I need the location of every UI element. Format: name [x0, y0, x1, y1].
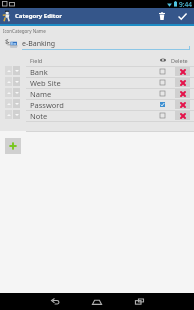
button[interactable]: Home — [82, 293, 112, 310]
button[interactable]: Move Bank down — [13, 66, 20, 75]
button[interactable]: Move Password up — [0, 99, 194, 110]
button[interactable]: Show Note — [157, 110, 168, 121]
staticText: Category Name — [12, 28, 46, 34]
button[interactable]: e-Banking — [22, 38, 190, 50]
button[interactable]: Delete category — [154, 8, 170, 24]
button[interactable]: Move Password up — [5, 99, 12, 108]
button[interactable]: Move Name down — [13, 88, 20, 97]
button[interactable]: Show Bank — [157, 66, 168, 77]
button[interactable]: Show Password — [157, 99, 168, 110]
button[interactable]: Choose icon — [2, 37, 20, 49]
button[interactable]: Move Web Site up — [5, 77, 12, 86]
button[interactable]: Move Password down — [13, 99, 20, 108]
button[interactable]: Delete Bank — [175, 67, 190, 76]
button[interactable]: Show Web Site — [157, 77, 168, 88]
button[interactable]: Move Bank up — [0, 66, 194, 77]
button[interactable]: Recent apps — [124, 293, 154, 310]
staticText: Icon — [3, 28, 12, 34]
staticText: e-Banking — [22, 39, 56, 49]
button[interactable]: Save — [174, 8, 190, 24]
button[interactable]: Move Name up — [0, 88, 194, 99]
staticText: Name — [30, 89, 52, 99]
button[interactable]: Move Bank up — [5, 66, 12, 75]
staticText: Note — [30, 111, 48, 121]
staticText: 9:44 — [179, 0, 192, 8]
staticText: Web Site — [30, 78, 61, 88]
staticText: Password — [30, 100, 64, 110]
button[interactable]: Move Note down — [13, 110, 20, 119]
staticText: Delete — [171, 57, 188, 64]
button[interactable]: Move Web Site up — [0, 77, 194, 88]
staticText: Field — [30, 57, 43, 64]
staticText: Category Editor — [15, 12, 62, 20]
staticText: Bank — [30, 67, 48, 77]
button[interactable]: Show Name — [157, 88, 168, 99]
button[interactable]: Delete Web Site — [175, 78, 190, 87]
button[interactable]: Move Name up — [5, 88, 12, 97]
button[interactable]: Add field — [5, 138, 21, 154]
button[interactable]: Move Web Site down — [13, 77, 20, 86]
button[interactable]: Delete Password — [175, 100, 190, 109]
button[interactable]: Move Note up — [0, 110, 194, 121]
button[interactable]: Back — [40, 293, 70, 310]
button[interactable]: Delete Note — [175, 111, 190, 120]
button[interactable]: Move Note up — [5, 110, 12, 119]
button[interactable]: Delete Name — [175, 89, 190, 98]
